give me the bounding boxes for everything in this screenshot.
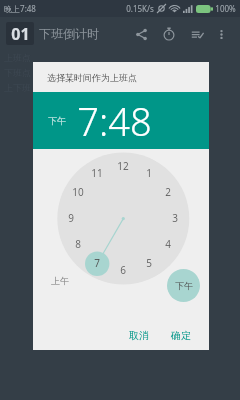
staticText: 下班倒计时 xyxy=(39,26,99,41)
staticText: 3 xyxy=(172,211,178,225)
button[interactable]: 取消 xyxy=(123,324,155,347)
staticText: 2 xyxy=(165,185,171,199)
button[interactable]: 7:48 xyxy=(77,95,152,147)
staticText: 9 xyxy=(68,211,74,225)
staticText: 7 xyxy=(94,256,100,270)
staticText: 7:48 xyxy=(77,95,152,147)
staticText: 选择某时间作为上班点 xyxy=(47,72,137,83)
button[interactable]: More options xyxy=(210,23,232,45)
button[interactable]: 上午 xyxy=(44,264,76,296)
staticText: 4 xyxy=(165,237,171,251)
button[interactable]: Timer xyxy=(158,23,180,45)
staticText: 下午 xyxy=(175,280,193,291)
staticText: 100% xyxy=(215,3,236,14)
staticText: 晚上7:48 xyxy=(4,3,36,14)
staticText: 5 xyxy=(146,256,152,270)
staticText: 6 xyxy=(120,263,126,277)
staticText: 11 xyxy=(91,166,103,180)
staticText: 10 xyxy=(72,185,84,199)
staticText: 0.15K/s xyxy=(126,3,154,14)
staticText: 1 xyxy=(146,166,152,180)
button[interactable]: Share xyxy=(130,23,152,45)
staticText: 确定 xyxy=(171,329,191,342)
button[interactable]: 下午 xyxy=(46,113,68,128)
staticText: 下午 xyxy=(48,115,66,126)
staticText: 01 xyxy=(11,23,30,45)
staticText: 12 xyxy=(117,159,129,173)
button[interactable]: 确定 xyxy=(165,324,197,347)
button[interactable]: Task list xyxy=(186,23,208,45)
staticText: 取消 xyxy=(129,329,149,342)
staticText: 8 xyxy=(75,237,81,251)
button[interactable]: 下午 xyxy=(167,269,200,302)
staticText: 上午 xyxy=(51,275,69,286)
button[interactable]: 01 xyxy=(6,22,34,45)
button[interactable]: 12 xyxy=(33,149,209,320)
